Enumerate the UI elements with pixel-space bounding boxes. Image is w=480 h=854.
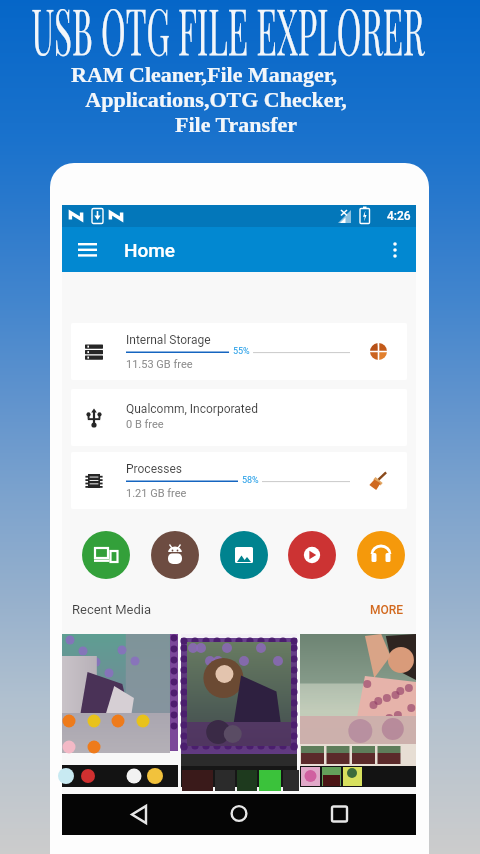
button[interactable]: Music xyxy=(357,531,405,579)
staticText: Home xyxy=(124,239,176,261)
button[interactable]: Internal Storage xyxy=(71,323,407,380)
button[interactable]: Devices xyxy=(82,531,130,579)
button[interactable]: Recent media 2 xyxy=(181,634,297,787)
button[interactable]: MORE xyxy=(368,601,406,619)
staticText: Applications,OTG Checker, xyxy=(0,87,456,111)
staticText: RAM Cleaner,File Manager, xyxy=(0,62,444,86)
button[interactable]: Applications xyxy=(151,531,199,579)
staticText: 4:26 xyxy=(387,209,411,223)
button[interactable]: Recent media 3 xyxy=(300,634,416,787)
button[interactable]: Recent media 1 xyxy=(62,634,178,787)
staticText: Processes xyxy=(126,462,182,476)
staticText: File Transfer xyxy=(0,112,476,136)
staticText: 1.21 GB free xyxy=(126,487,187,500)
staticText: 58% xyxy=(242,475,259,486)
button[interactable]: Qualcomm, Incorporated xyxy=(71,389,407,446)
staticText: MORE xyxy=(370,603,404,617)
button[interactable]: Gallery xyxy=(220,531,268,579)
staticText: USB OTG FILE EXPLORER xyxy=(15,0,441,71)
staticText: 0 B free xyxy=(126,418,164,431)
button[interactable]: Processes xyxy=(71,452,407,509)
button[interactable]: Videos xyxy=(288,531,336,579)
staticText: Qualcomm, Incorporated xyxy=(126,402,258,416)
button[interactable]: Open navigation menu xyxy=(69,232,105,268)
staticText: 11.53 GB free xyxy=(126,358,193,371)
staticText: Recent Media xyxy=(72,602,152,617)
button[interactable]: More options xyxy=(378,233,412,267)
staticText: 55% xyxy=(233,346,250,357)
staticText: Internal Storage xyxy=(126,333,211,347)
